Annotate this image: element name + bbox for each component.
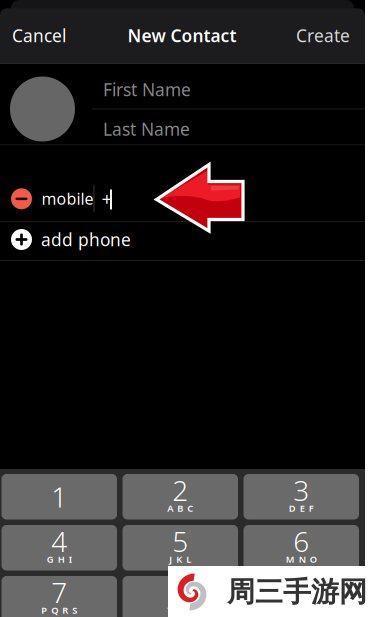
button[interactable]: add phone [0,0,369,617]
staticText: 4 [51,523,67,560]
staticText: Last Name [103,117,190,140]
staticText: First Name [103,78,191,101]
button[interactable]: 4 [1,525,117,570]
staticText: + [101,186,112,211]
staticText: 1 [51,478,67,515]
button[interactable]: Cancel [0,0,369,617]
button[interactable]: 3 [243,474,359,519]
staticText: mobile [41,188,93,209]
staticText: add phone [41,228,131,251]
staticText: Create [296,24,350,47]
button[interactable]: 6 [243,525,359,570]
button[interactable]: Remove mobile [0,0,369,617]
staticText: 周三手游网 [227,575,367,609]
button[interactable]: 8 [122,576,238,617]
staticText: D E F [289,502,314,514]
staticText: M N O [286,553,317,565]
staticText: Cancel [12,24,66,47]
staticText: P Q R S [41,604,77,616]
button[interactable]: 5 [122,525,238,570]
staticText: 3 [293,472,309,509]
button[interactable]: 2 [122,474,238,519]
button[interactable]: Create [0,0,369,617]
staticText: 8 [172,574,188,611]
staticText: 6 [293,523,309,560]
staticText: 2 [172,472,188,509]
button[interactable]: 7 [1,576,117,617]
button[interactable]: 1 [1,474,117,519]
staticText: J K L [169,553,191,565]
staticText: T U V [167,604,193,616]
button[interactable]: 9 [243,576,359,617]
staticText: 9 [293,574,309,611]
staticText: G H I [47,553,72,565]
staticText: 7 [51,574,67,611]
staticText: W X Y Z [282,604,320,616]
staticText: 5 [172,523,188,560]
staticText: New Contact [127,24,236,47]
staticText: A B C [167,502,193,514]
